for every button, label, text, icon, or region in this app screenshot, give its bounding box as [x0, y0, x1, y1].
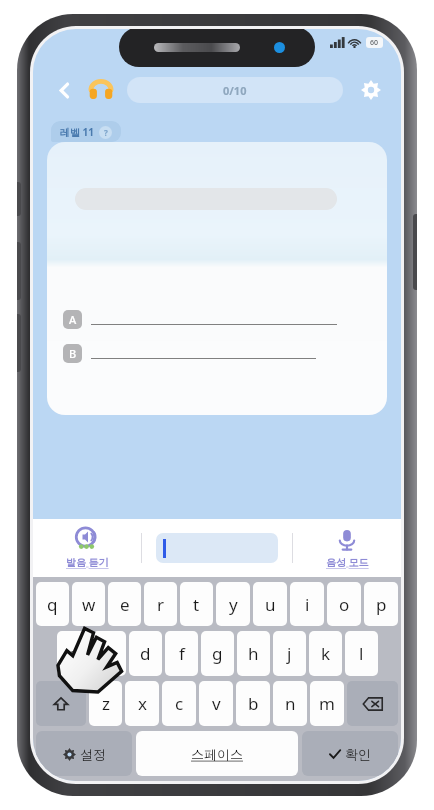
- button[interactable]: 스페이스: [136, 731, 298, 776]
- staticText: q: [47, 593, 58, 616]
- staticText: m: [319, 692, 335, 715]
- staticText: x: [138, 692, 147, 715]
- staticText: z: [102, 692, 110, 715]
- staticText: h: [248, 642, 259, 665]
- staticText: B: [69, 346, 77, 361]
- button[interactable]: j: [273, 631, 306, 676]
- button[interactable]: s: [93, 631, 126, 676]
- staticText: 확인: [345, 746, 371, 762]
- button[interactable]: w: [72, 582, 105, 626]
- staticText: 60: [370, 38, 379, 48]
- staticText: f: [179, 642, 185, 665]
- staticText: t: [193, 593, 200, 616]
- staticText: p: [376, 593, 387, 616]
- button[interactable]: Headphones: [85, 74, 117, 106]
- staticText: o: [339, 593, 350, 616]
- button[interactable]: f: [165, 631, 198, 676]
- staticText: s: [105, 642, 114, 665]
- button[interactable]: 음성 모드: [293, 519, 401, 577]
- button[interactable]: b: [236, 681, 270, 726]
- button[interactable]: h: [237, 631, 270, 676]
- staticText: A: [69, 312, 77, 327]
- staticText: 0/10: [223, 83, 247, 98]
- staticText: r: [157, 593, 165, 616]
- staticText: e: [120, 593, 130, 616]
- button[interactable]: 발음 듣기: [33, 519, 141, 577]
- staticText: y: [229, 593, 238, 616]
- button[interactable]: t: [180, 582, 213, 626]
- button[interactable]: z: [89, 681, 122, 726]
- button[interactable]: m: [310, 681, 344, 726]
- button[interactable]: Back: [47, 73, 81, 107]
- button[interactable]: q: [36, 582, 69, 626]
- staticText: i: [305, 593, 310, 616]
- button[interactable]: 확인: [302, 731, 398, 776]
- button[interactable]: r: [144, 582, 177, 626]
- button[interactable]: [156, 533, 278, 563]
- button[interactable]: o: [327, 582, 361, 626]
- button[interactable]: a: [57, 631, 90, 676]
- staticText: c: [175, 692, 184, 715]
- staticText: a: [69, 642, 79, 665]
- staticText: 설정: [80, 746, 106, 762]
- button[interactable]: B: [63, 344, 387, 363]
- button[interactable]: n: [273, 681, 307, 726]
- button[interactable]: p: [364, 582, 398, 626]
- staticText: j: [287, 642, 292, 665]
- button[interactable]: Backspace: [347, 681, 398, 726]
- button[interactable]: x: [125, 681, 159, 726]
- button[interactable]: Settings: [355, 74, 387, 106]
- button[interactable]: u: [253, 582, 287, 626]
- button[interactable]: i: [290, 582, 324, 626]
- staticText: w: [82, 593, 96, 616]
- button[interactable]: d: [129, 631, 162, 676]
- button[interactable]: 레벨 11: [51, 121, 121, 142]
- staticText: 스페이스: [191, 746, 243, 762]
- staticText: 발음 듣기: [66, 555, 109, 569]
- staticText: k: [321, 642, 331, 665]
- staticText: 음성 모드: [326, 555, 369, 569]
- staticText: d: [140, 642, 151, 665]
- button[interactable]: y: [216, 582, 250, 626]
- button[interactable]: e: [108, 582, 141, 626]
- button[interactable]: l: [345, 631, 378, 676]
- button[interactable]: v: [199, 681, 233, 726]
- button[interactable]: Shift: [36, 681, 86, 726]
- staticText: g: [212, 642, 223, 665]
- button[interactable]: g: [201, 631, 234, 676]
- button[interactable]: 0/10: [127, 77, 343, 103]
- button[interactable]: 설정: [36, 731, 132, 776]
- button[interactable]: c: [162, 681, 196, 726]
- staticText: v: [212, 692, 221, 715]
- button[interactable]: A: [63, 310, 387, 329]
- staticText: 레벨 11: [60, 125, 95, 139]
- staticText: u: [265, 593, 276, 616]
- staticText: n: [285, 692, 296, 715]
- staticText: ?: [104, 127, 108, 138]
- staticText: b: [248, 692, 259, 715]
- staticText: l: [359, 642, 364, 665]
- button[interactable]: k: [309, 631, 342, 676]
